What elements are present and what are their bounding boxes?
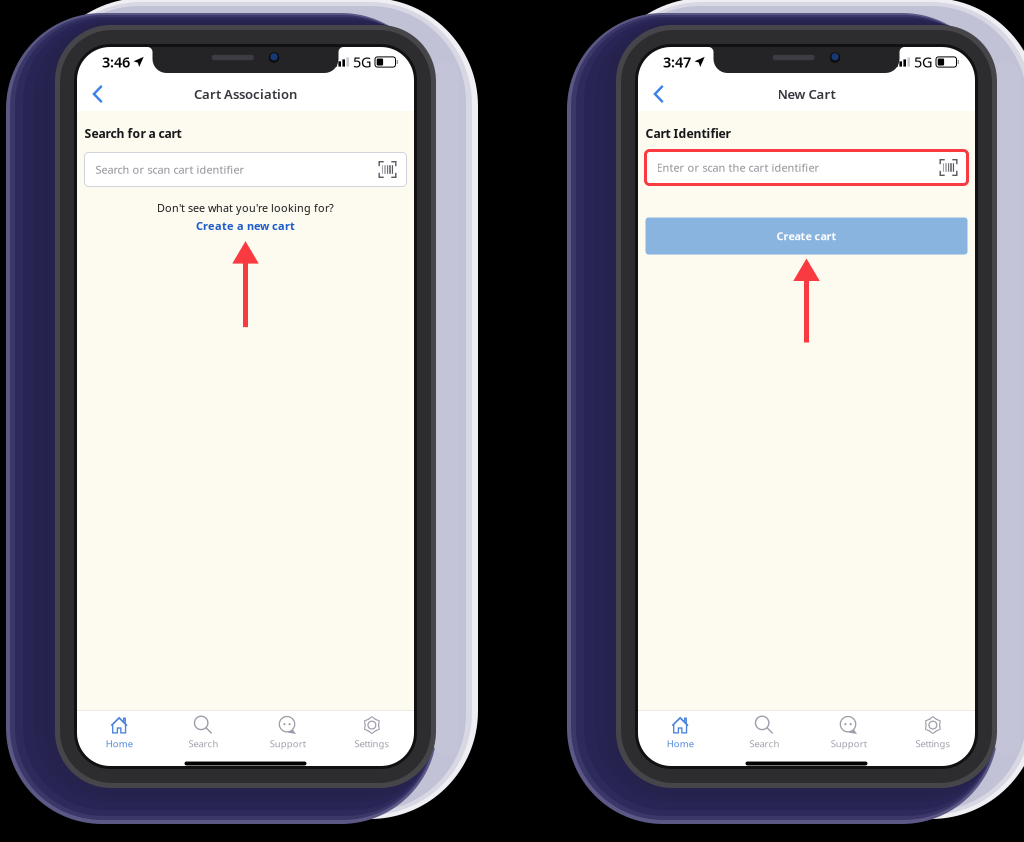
button[interactable]: Scan barcode [939, 159, 957, 176]
button[interactable]: Back [79, 77, 115, 111]
staticText: Cart Identifier [645, 125, 730, 141]
staticText: Search [188, 737, 218, 750]
button[interactable]: Settings [891, 711, 975, 755]
button[interactable]: Home [638, 711, 722, 755]
button[interactable]: Create a new cart [196, 216, 295, 235]
staticText: Search for a cart [84, 125, 181, 141]
staticText: 5G [914, 52, 932, 72]
button[interactable]: Support [806, 711, 891, 755]
button[interactable]: Back [640, 77, 676, 111]
button[interactable]: Search [722, 711, 806, 755]
button[interactable]: Settings [330, 711, 414, 755]
button[interactable]: Create cart [645, 217, 967, 254]
staticText: Home [667, 737, 694, 750]
staticText: Settings [354, 737, 389, 750]
staticText: 3:47 [663, 52, 691, 72]
button[interactable]: Support [245, 711, 330, 755]
staticText: Search or scan cart identifier [95, 162, 244, 177]
button[interactable]: Scan barcode [378, 161, 396, 178]
staticText: Search [749, 737, 779, 750]
staticText: Create a new cart [196, 218, 295, 233]
staticText: 5G [353, 52, 371, 72]
staticText: Home [106, 737, 133, 750]
staticText: 3:46 [102, 52, 130, 72]
staticText: Support [270, 737, 306, 750]
staticText: Create cart [776, 229, 836, 243]
staticText: Enter or scan the cart identifier [656, 160, 819, 175]
button[interactable]: Home [77, 711, 161, 755]
staticText: Support [831, 737, 867, 750]
staticText: Cart Association [194, 85, 297, 103]
staticText: New Cart [777, 85, 835, 103]
button[interactable]: Search [161, 711, 245, 755]
staticText: Settings [915, 737, 950, 750]
staticText: Don't see what you're looking for? [157, 200, 334, 215]
